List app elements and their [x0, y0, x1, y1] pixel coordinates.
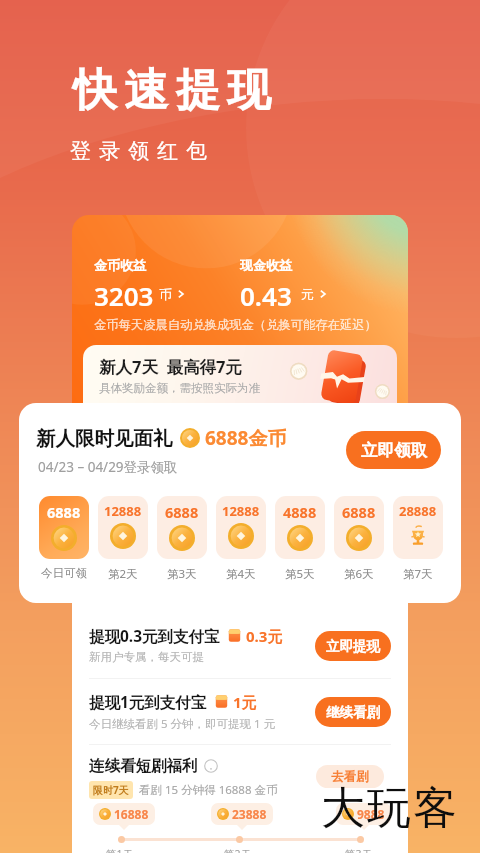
- button[interactable]: 提现0.3元到支付宝: [89, 613, 391, 678]
- button[interactable]: 12888: [216, 496, 266, 559]
- button[interactable]: 6888: [334, 496, 384, 559]
- other: Help: [204, 759, 218, 773]
- staticText: 第3天: [345, 847, 373, 853]
- staticText: 立即提现: [326, 638, 380, 655]
- staticText: 第2天: [224, 847, 252, 853]
- staticText: 金币收益: [94, 257, 146, 273]
- button[interactable]: 立即领取: [346, 431, 441, 469]
- staticText: 第1天: [106, 847, 134, 853]
- staticText: 大玩客: [320, 781, 458, 836]
- staticText: 元: [301, 286, 314, 302]
- staticText: 6888: [342, 502, 376, 522]
- staticText: 1元: [233, 692, 257, 712]
- staticText: 金币每天凌晨自动兑换成现金（兑换可能存在延迟）: [94, 317, 377, 332]
- staticText: 现金收益: [240, 257, 292, 273]
- staticText: 12888: [222, 502, 260, 520]
- button[interactable]: 12888: [98, 496, 148, 559]
- staticText: 立即领取: [361, 440, 427, 461]
- staticText: 第7天: [403, 566, 433, 582]
- staticText: 具体奖励金额，需按照实际为准: [99, 381, 260, 395]
- button[interactable]: 立即提现: [315, 631, 391, 661]
- staticText: 第3天: [167, 566, 197, 582]
- staticText: 第2天: [108, 566, 138, 582]
- staticText: 12888: [104, 502, 142, 520]
- staticText: 28888: [399, 502, 437, 520]
- staticText: 04/23 – 04/29登录领取: [38, 458, 178, 476]
- button[interactable]: 新人7天 最高得7元: [83, 345, 397, 406]
- staticText: 新人7天 最高得7元: [99, 355, 242, 378]
- staticText: 4888: [283, 502, 317, 522]
- staticText: 币: [159, 286, 172, 302]
- staticText: 继续看剧: [326, 704, 380, 721]
- staticText: 去看剧: [331, 769, 369, 785]
- staticText: 0.3元: [246, 626, 283, 646]
- staticText: 6888: [47, 502, 81, 522]
- staticText: 看剧 15 分钟得 16888 金币: [139, 782, 278, 798]
- staticText: 第6天: [344, 566, 374, 582]
- staticText: 快速提现: [69, 63, 275, 118]
- staticText: 9888: [357, 806, 385, 822]
- button[interactable]: 去看剧: [316, 765, 384, 788]
- button[interactable]: 6888: [157, 496, 207, 559]
- staticText: 提现1元到支付宝: [89, 691, 207, 712]
- staticText: 新人限时见面礼: [36, 426, 173, 451]
- staticText: 提现0.3元到支付宝: [89, 625, 220, 646]
- staticText: 0.43: [240, 278, 292, 313]
- button[interactable]: 提现1元到支付宝: [89, 679, 391, 744]
- staticText: 登录领红包: [66, 138, 211, 164]
- button[interactable]: 28888: [393, 496, 443, 559]
- button[interactable]: 继续看剧: [315, 697, 391, 727]
- staticText: 6888: [165, 502, 199, 522]
- staticText: 23888: [232, 806, 267, 822]
- staticText: 新用户专属，每天可提: [89, 650, 204, 664]
- staticText: 限时7天: [93, 783, 129, 797]
- staticText: 今日可领: [41, 566, 87, 580]
- staticText: 16888: [114, 806, 149, 822]
- staticText: 今日继续看剧 5 分钟，即可提现 1 元: [89, 716, 276, 732]
- staticText: 连续看短剧福利: [89, 756, 198, 776]
- button[interactable]: 6888: [39, 496, 89, 559]
- staticText: 6888金币: [205, 425, 287, 451]
- button[interactable]: 4888: [275, 496, 325, 559]
- staticText: 第4天: [226, 566, 256, 582]
- staticText: 第5天: [285, 566, 315, 582]
- staticText: 3203: [94, 278, 154, 313]
